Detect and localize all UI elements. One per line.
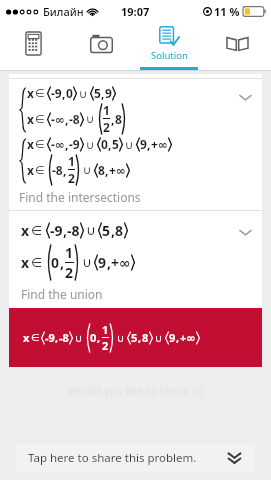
staticText: ,: [138, 330, 142, 345]
staticText: 1: [102, 322, 109, 337]
staticText: x: [27, 85, 34, 101]
staticText: 2: [103, 119, 110, 135]
staticText: ∪: [155, 332, 163, 344]
staticText: ∪: [86, 223, 96, 238]
staticText: x: [27, 111, 34, 127]
staticText: Solution: [151, 49, 188, 62]
staticText: ∪: [86, 138, 95, 151]
staticText: ∈: [35, 113, 45, 126]
staticText: 1: [103, 102, 110, 118]
staticText: ,: [176, 330, 180, 345]
staticText: ,: [97, 330, 101, 345]
staticText: -∞: [51, 136, 65, 152]
staticText: ,: [62, 85, 66, 101]
staticText: 8: [115, 111, 122, 127]
staticText: 2: [65, 263, 74, 282]
staticText: x: [21, 221, 30, 240]
staticText: 1: [68, 153, 75, 169]
staticText: Find the union: [21, 286, 103, 302]
staticText: 9: [169, 330, 176, 345]
staticText: -9: [50, 221, 63, 240]
staticText: 0: [90, 330, 97, 345]
staticText: 1: [65, 243, 74, 262]
staticText: x: [27, 136, 34, 152]
staticText: ∈: [31, 332, 40, 344]
staticText: 2: [68, 170, 75, 186]
button[interactable]: Calculator: [0, 22, 67, 70]
staticText: x: [23, 330, 30, 345]
staticText: 8: [115, 221, 124, 240]
staticText: -8: [69, 111, 80, 127]
staticText: 19:07: [121, 4, 150, 19]
button[interactable]: x: [9, 211, 262, 308]
staticText: ∈: [31, 223, 43, 238]
staticText: 0: [66, 85, 73, 101]
staticText: 0: [101, 136, 108, 152]
staticText: ,: [65, 136, 69, 152]
staticText: 2: [102, 338, 109, 353]
staticText: ,: [108, 136, 112, 152]
staticText: -8: [59, 330, 69, 345]
staticText: ,: [101, 85, 105, 101]
staticText: +∞: [109, 162, 126, 178]
staticText: Tap here to share this problem.: [28, 450, 197, 466]
staticText: 8: [98, 162, 105, 178]
staticText: 5: [102, 221, 111, 240]
staticText: 9: [105, 85, 112, 101]
staticText: 0: [51, 253, 60, 272]
staticText: ,: [65, 111, 69, 127]
staticText: -8: [52, 162, 63, 178]
staticText: -9: [51, 85, 62, 101]
staticText: -8: [67, 221, 80, 240]
staticText: 5: [112, 136, 119, 152]
staticText: Find the intersections: [19, 189, 141, 205]
staticText: ,: [147, 136, 151, 152]
staticText: +∞: [151, 136, 168, 152]
staticText: 9: [140, 136, 147, 152]
staticText: x: [27, 162, 34, 178]
button[interactable]: Solution: [135, 22, 203, 70]
staticText: -9: [69, 136, 80, 152]
staticText: ∈: [31, 255, 43, 270]
staticText: ∪: [117, 332, 125, 344]
staticText: -∞: [51, 111, 65, 127]
staticText: Would you like to check it?: [68, 383, 204, 398]
staticText: ∪: [79, 87, 88, 100]
button[interactable]: x: [9, 79, 262, 210]
button[interactable]: Tap here to share this problem.: [16, 444, 255, 472]
staticText: ∈: [35, 164, 45, 177]
staticText: 9: [98, 253, 107, 272]
staticText: Билайн: [43, 4, 84, 19]
button[interactable]: Camera: [67, 22, 135, 70]
staticText: 5: [94, 85, 101, 101]
staticText: ,: [107, 253, 111, 272]
staticText: ,: [63, 221, 67, 240]
staticText: ,: [105, 162, 109, 178]
button[interactable]: x: [9, 308, 262, 367]
staticText: +∞: [111, 253, 131, 272]
staticText: 5: [131, 330, 138, 345]
staticText: ,: [55, 330, 59, 345]
staticText: +∞: [180, 330, 196, 345]
staticText: ∪: [83, 163, 92, 176]
staticText: ∪: [75, 332, 83, 344]
staticText: -9: [45, 330, 55, 345]
staticText: 8: [142, 330, 149, 345]
staticText: ,: [60, 253, 64, 272]
staticText: ,: [111, 111, 115, 127]
staticText: ∪: [86, 112, 95, 125]
staticText: ∈: [35, 87, 45, 100]
staticText: x: [21, 253, 30, 272]
staticText: ∪: [125, 138, 134, 151]
staticText: 11 %: [214, 4, 240, 19]
button[interactable]: Textbook: [203, 22, 271, 70]
staticText: ∪: [82, 255, 92, 270]
staticText: ,: [111, 221, 115, 240]
staticText: ,: [63, 162, 67, 178]
staticText: ∈: [35, 138, 45, 151]
